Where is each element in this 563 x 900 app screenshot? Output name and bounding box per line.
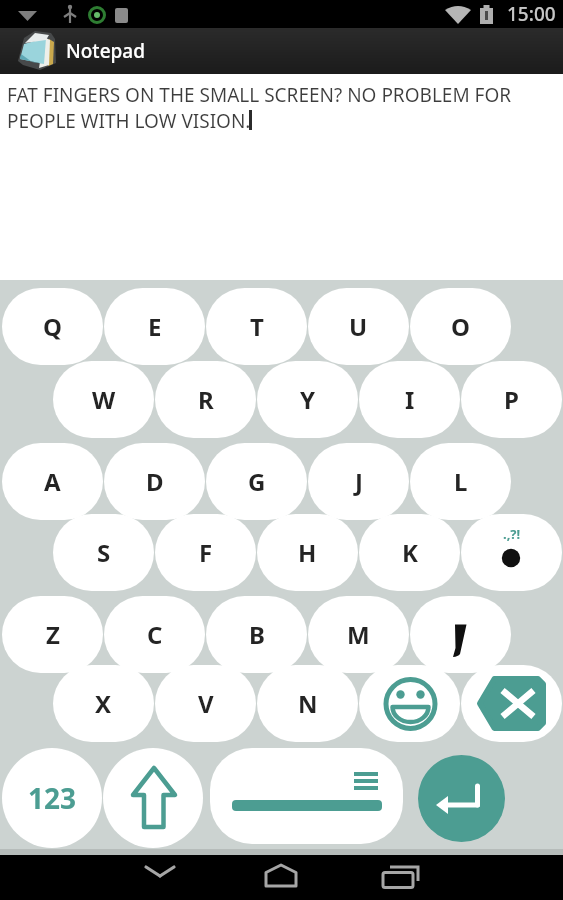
- button[interactable]: [461, 665, 562, 742]
- button[interactable]: D: [104, 443, 205, 520]
- staticText: 123: [28, 779, 77, 817]
- button[interactable]: [359, 665, 460, 742]
- button[interactable]: [410, 596, 511, 673]
- button[interactable]: [103, 748, 203, 848]
- staticText: Y: [300, 383, 316, 416]
- staticText: D: [146, 465, 164, 498]
- staticText: I: [405, 383, 415, 416]
- button[interactable]: H: [257, 514, 358, 591]
- staticText: B: [249, 618, 265, 651]
- staticText: K: [402, 536, 418, 569]
- staticText: P: [504, 383, 519, 416]
- button[interactable]: T: [206, 288, 307, 365]
- button[interactable]: U: [308, 288, 409, 365]
- button[interactable]: Y: [257, 361, 358, 438]
- button[interactable]: G: [206, 443, 307, 520]
- button[interactable]: S: [53, 514, 154, 591]
- staticText: O: [451, 310, 470, 343]
- button[interactable]: Z: [2, 596, 103, 673]
- button[interactable]: F: [155, 514, 256, 591]
- staticText: A: [44, 465, 61, 498]
- staticText: E: [148, 310, 162, 343]
- button[interactable]: A: [2, 443, 103, 520]
- button[interactable]: [260, 861, 302, 891]
- button[interactable]: L: [410, 443, 511, 520]
- staticText: S: [97, 536, 111, 569]
- staticText: G: [248, 465, 266, 498]
- staticText: H: [298, 536, 317, 569]
- button[interactable]: [140, 863, 180, 887]
- staticText: R: [198, 383, 214, 416]
- button[interactable]: O: [410, 288, 511, 365]
- staticText: J: [355, 465, 363, 498]
- button[interactable]: R: [155, 361, 256, 438]
- staticText: F: [199, 536, 213, 569]
- button[interactable]: N: [257, 665, 358, 742]
- button[interactable]: 123: [2, 748, 102, 848]
- button[interactable]: K: [359, 514, 460, 591]
- button[interactable]: [418, 755, 505, 842]
- staticText: Z: [46, 618, 60, 651]
- staticText: V: [198, 687, 214, 720]
- button[interactable]: E: [104, 288, 205, 365]
- button[interactable]: W: [53, 361, 154, 438]
- staticText: M: [347, 618, 370, 651]
- staticText: W: [92, 383, 116, 416]
- button[interactable]: .,?!: [461, 514, 562, 591]
- button[interactable]: I: [359, 361, 460, 438]
- staticText: N: [298, 687, 318, 720]
- button[interactable]: [210, 748, 403, 844]
- staticText: C: [147, 618, 163, 651]
- button[interactable]: FAT FINGERS ON THE SMALL SCREEN? NO PROB…: [0, 74, 563, 280]
- staticText: L: [454, 465, 468, 498]
- staticText: Q: [43, 310, 62, 343]
- staticText: Notepad: [66, 38, 145, 64]
- button[interactable]: B: [206, 596, 307, 673]
- button[interactable]: J: [308, 443, 409, 520]
- button[interactable]: [378, 861, 424, 891]
- staticText: FAT FINGERS ON THE SMALL SCREEN? NO PROB…: [7, 82, 512, 133]
- button[interactable]: [15, 30, 57, 72]
- staticText: T: [250, 310, 264, 343]
- button[interactable]: M: [308, 596, 409, 673]
- button[interactable]: Q: [2, 288, 103, 365]
- button[interactable]: X: [53, 665, 154, 742]
- button[interactable]: V: [155, 665, 256, 742]
- staticText: 15:00: [507, 1, 556, 27]
- button[interactable]: P: [461, 361, 562, 438]
- staticText: X: [95, 687, 112, 720]
- staticText: U: [349, 310, 368, 343]
- button[interactable]: C: [104, 596, 205, 673]
- staticText: .,?!: [503, 525, 521, 543]
